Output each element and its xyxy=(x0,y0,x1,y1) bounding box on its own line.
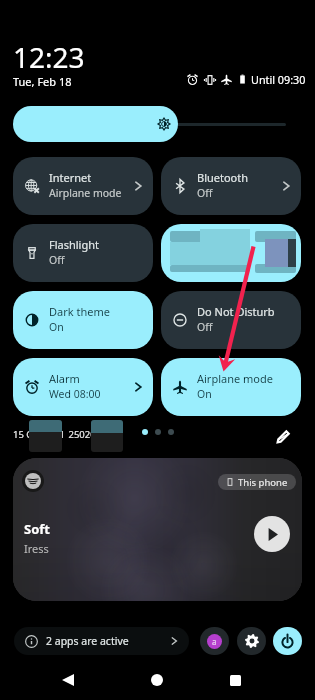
button[interactable]: Bluetooth xyxy=(161,157,301,215)
staticText: Off xyxy=(197,186,213,200)
staticText: Soft xyxy=(24,520,50,538)
button[interactable]: Play xyxy=(254,516,290,552)
button[interactable]: User xyxy=(200,627,229,655)
button[interactable]: Brightness xyxy=(13,106,178,142)
staticText: Airplane mode xyxy=(49,186,122,200)
staticText: Off xyxy=(197,320,213,334)
button[interactable]: Edit tiles xyxy=(271,424,295,448)
staticText: 12:23 xyxy=(13,38,85,76)
staticText: Alarm xyxy=(49,371,80,386)
button[interactable]: Dark theme xyxy=(13,291,153,349)
staticText: On xyxy=(197,387,212,401)
staticText: Wed 08:00 xyxy=(49,387,101,401)
staticText: Until 09:30 xyxy=(251,72,306,87)
button[interactable]: Internet xyxy=(13,157,153,215)
button[interactable]: This phone xyxy=(218,474,296,490)
button[interactable]: Settings xyxy=(237,627,266,655)
staticText: Off xyxy=(49,253,65,267)
staticText: Flashlight xyxy=(49,237,99,252)
staticText: Iress xyxy=(24,541,49,556)
button[interactable]: 2 apps are active xyxy=(14,627,189,655)
button[interactable]: Home xyxy=(145,668,169,692)
button[interactable]: This phone xyxy=(13,458,302,601)
button[interactable]: Flashlight xyxy=(13,224,153,282)
staticText: Bluetooth xyxy=(197,170,249,185)
button[interactable]: Airplane mode xyxy=(161,358,301,416)
button[interactable]: Back xyxy=(56,668,80,692)
staticText: This phone xyxy=(238,476,288,489)
staticText: On xyxy=(49,320,64,334)
button[interactable]: Alarm xyxy=(13,358,153,416)
button[interactable]: Recent apps xyxy=(223,668,247,692)
staticText: Internet xyxy=(49,170,92,185)
staticText: a xyxy=(212,636,217,647)
staticText: Do Not Disturb xyxy=(197,304,275,319)
button[interactable] xyxy=(161,224,301,282)
button[interactable]: Power xyxy=(273,627,302,655)
staticText: Airplane mode xyxy=(197,371,273,386)
staticText: 2 apps are active xyxy=(46,634,129,648)
staticText: Tue, Feb 18 xyxy=(13,74,72,89)
staticText: 15 GB used 25020 left xyxy=(13,428,113,441)
button[interactable]: Do Not Disturb xyxy=(161,291,301,349)
staticText: Dark theme xyxy=(49,304,110,319)
